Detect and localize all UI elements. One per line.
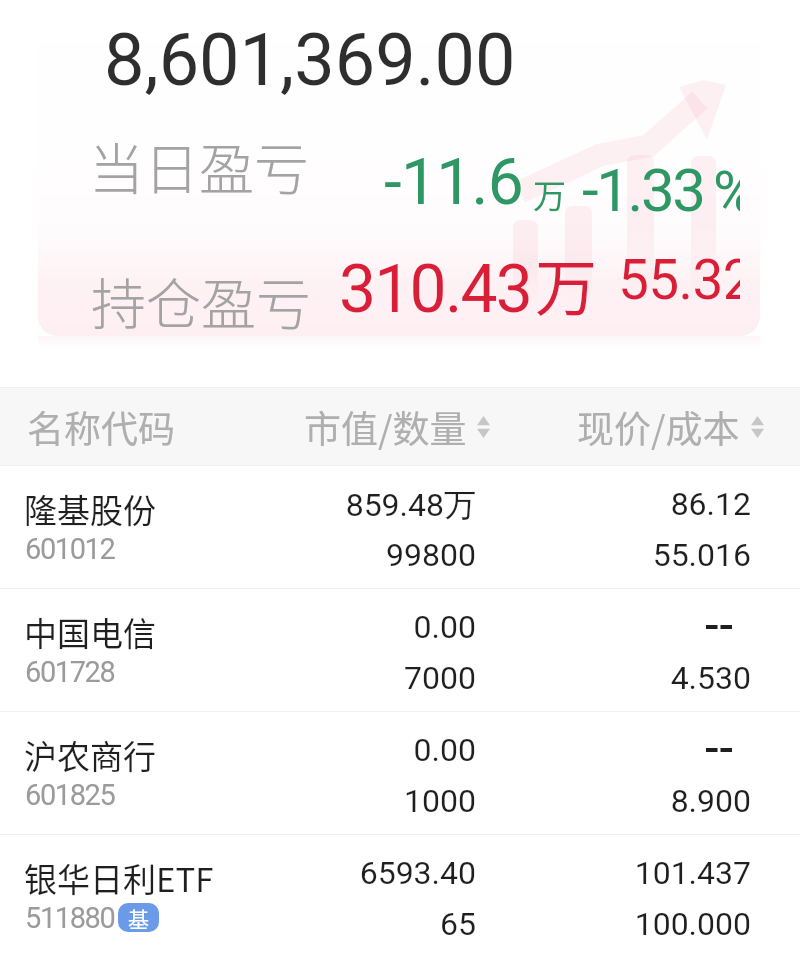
button[interactable]: 市值/数量: [304, 388, 480, 466]
staticText: 310.43: [339, 251, 532, 328]
staticText: 隆基股份: [24, 485, 156, 533]
staticText: 511880: [25, 901, 115, 935]
staticText: 601012: [25, 532, 115, 566]
staticText: 8.900: [510, 782, 751, 820]
button[interactable]: [0, 712, 800, 835]
staticText: 8,601,369.00: [104, 18, 516, 102]
staticText: 55.016: [510, 536, 751, 574]
button[interactable]: [0, 466, 800, 589]
staticText: 86.12: [510, 485, 751, 523]
staticText: 万: [535, 239, 598, 329]
staticText: 0.00: [231, 608, 476, 646]
button[interactable]: [0, 589, 800, 712]
staticText: 65: [231, 905, 476, 943]
staticText: 0.00: [231, 731, 476, 769]
staticText: 市值/数量: [304, 400, 467, 454]
staticText: 859.48万: [231, 485, 476, 525]
staticText: 基: [128, 903, 149, 932]
button[interactable]: [38, 0, 760, 336]
staticText: 601728: [25, 655, 115, 689]
staticText: %: [713, 158, 740, 226]
staticText: 4.530: [510, 659, 751, 697]
staticText: 中国电信: [24, 608, 156, 656]
staticText: 101.437: [510, 854, 751, 892]
staticText: 现价/成本: [577, 400, 740, 454]
staticText: 100.000: [510, 905, 751, 943]
staticText: 601825: [25, 778, 115, 812]
staticText: -1.33: [582, 155, 704, 225]
button[interactable]: 现价/成本: [577, 388, 753, 466]
staticText: 55.32: [618, 248, 740, 312]
staticText: 99800: [231, 536, 476, 574]
staticText: 7000: [231, 659, 476, 697]
staticText: 沪农商行: [24, 731, 156, 779]
other: Sort: [751, 416, 764, 438]
staticText: 名称代码: [27, 400, 175, 454]
staticText: 1000: [231, 782, 476, 820]
button[interactable]: 名称代码: [27, 388, 207, 466]
staticText: 持仓盈亏: [91, 260, 312, 340]
staticText: -11.6: [384, 145, 523, 220]
staticText: 当日盈亏: [89, 125, 310, 205]
staticText: 银华日利ETF: [24, 854, 214, 902]
other: Sort: [477, 416, 490, 438]
staticText: 6593.40: [231, 854, 476, 892]
staticText: 万: [533, 170, 566, 218]
button[interactable]: [0, 835, 800, 958]
